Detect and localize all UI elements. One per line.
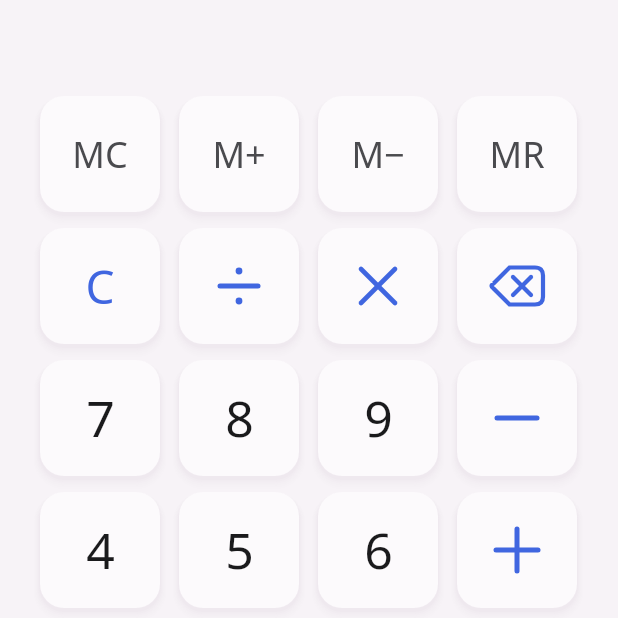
staticText: 8 xyxy=(225,384,254,452)
staticText: MC xyxy=(72,130,128,179)
staticText: M+ xyxy=(212,130,266,179)
button[interactable]: 9 xyxy=(318,360,438,476)
button[interactable]: 7 xyxy=(40,360,160,476)
button[interactable]: M+ xyxy=(179,96,299,212)
staticText: 6 xyxy=(364,516,393,584)
button[interactable]: Minus xyxy=(457,360,577,476)
button[interactable]: MR xyxy=(457,96,577,212)
button[interactable]: Plus xyxy=(457,492,577,608)
staticText: 5 xyxy=(225,516,254,584)
staticText: 9 xyxy=(364,384,393,452)
button[interactable]: 5 xyxy=(179,492,299,608)
staticText: 4 xyxy=(86,516,115,584)
button[interactable]: 4 xyxy=(40,492,160,608)
staticText: M− xyxy=(351,130,405,179)
button[interactable]: 8 xyxy=(179,360,299,476)
staticText: 7 xyxy=(86,384,115,452)
staticText: MR xyxy=(489,130,545,179)
button[interactable]: Divide xyxy=(179,228,299,344)
button[interactable]: Backspace xyxy=(457,228,577,344)
staticText: C xyxy=(85,255,115,318)
button[interactable]: MC xyxy=(40,96,160,212)
button[interactable]: 6 xyxy=(318,492,438,608)
button[interactable]: C xyxy=(40,228,160,344)
button[interactable]: M− xyxy=(318,96,438,212)
button[interactable]: Multiply xyxy=(318,228,438,344)
